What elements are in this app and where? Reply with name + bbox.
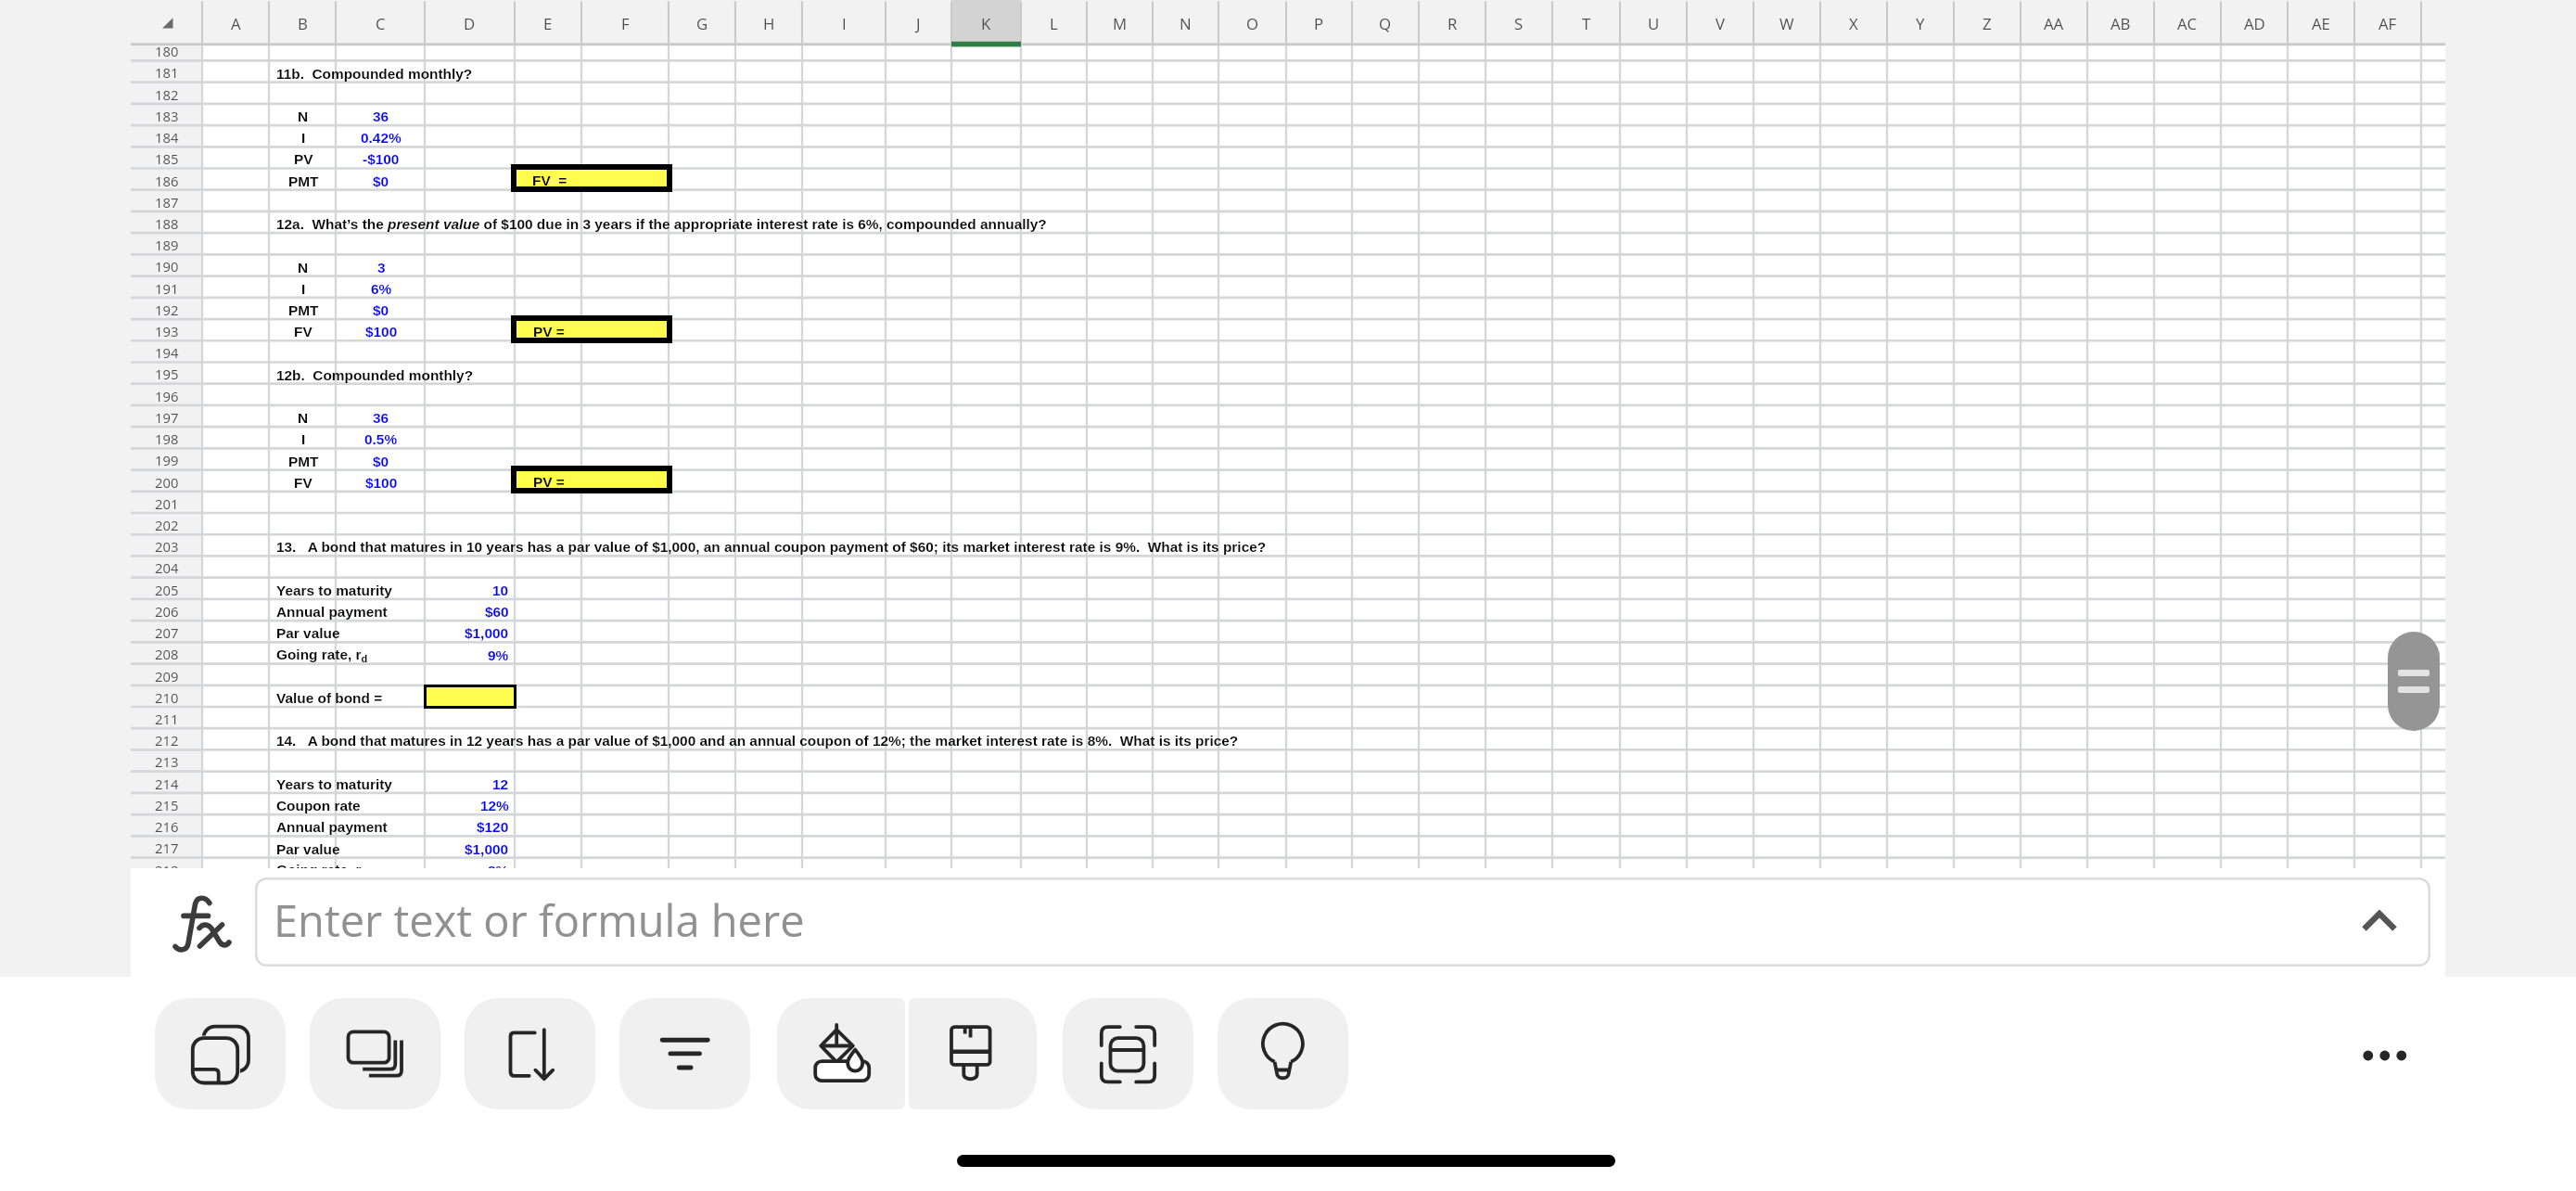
button[interactable]: O xyxy=(1218,2,1286,45)
button[interactable]: 196 xyxy=(131,385,202,406)
button[interactable]: H xyxy=(735,2,802,45)
button[interactable]: 208 xyxy=(131,643,202,664)
button[interactable]: 217 xyxy=(131,837,202,858)
button[interactable]: A xyxy=(202,2,269,45)
button[interactable]: 198 xyxy=(131,428,202,449)
button[interactable]: N xyxy=(269,106,336,127)
button[interactable]: 8% xyxy=(425,860,515,870)
button[interactable]: F xyxy=(581,2,669,45)
button[interactable]: 216 xyxy=(131,815,202,837)
button[interactable]: 10 xyxy=(425,580,515,601)
button[interactable]: N xyxy=(269,407,336,429)
button[interactable]: 186 xyxy=(131,170,202,191)
button[interactable]: Merge cells xyxy=(1063,998,1193,1109)
button[interactable]: 36 xyxy=(336,106,425,127)
button[interactable]: G xyxy=(669,2,735,45)
button[interactable]: Years to maturity xyxy=(269,774,425,795)
button[interactable]: L xyxy=(1021,2,1087,45)
button[interactable]: 0.5% xyxy=(336,429,425,450)
button[interactable]: PV = xyxy=(516,321,667,338)
button[interactable]: I xyxy=(269,278,336,300)
button[interactable]: 197 xyxy=(131,406,202,428)
button[interactable]: 189 xyxy=(131,234,202,255)
button[interactable]: 180 xyxy=(131,45,202,61)
button[interactable]: 206 xyxy=(131,600,202,621)
button[interactable]: U xyxy=(1620,2,1687,45)
button[interactable]: Select all xyxy=(131,0,202,45)
button[interactable]: Coupon rate xyxy=(269,795,425,816)
button[interactable]: T xyxy=(1552,2,1620,45)
button[interactable]: 199 xyxy=(131,449,202,470)
button[interactable]: 0.42% xyxy=(336,127,425,148)
button[interactable]: W xyxy=(1753,2,1820,45)
button[interactable]: $60 xyxy=(425,601,515,622)
button[interactable]: PV = xyxy=(516,471,667,488)
button[interactable]: PV xyxy=(269,148,336,170)
button[interactable]: FV xyxy=(269,472,336,493)
button[interactable]: 36 xyxy=(336,407,425,429)
button[interactable]: 200 xyxy=(131,471,202,493)
button[interactable]: $0 xyxy=(336,451,425,472)
button[interactable]: I xyxy=(269,429,336,450)
button[interactable]: PMT xyxy=(269,171,336,192)
button[interactable]: $100 xyxy=(336,472,425,493)
button[interactable]: -$100 xyxy=(336,148,425,170)
button[interactable]: 190 xyxy=(131,255,202,276)
button[interactable]: I xyxy=(269,127,336,148)
button[interactable]: 212 xyxy=(131,729,202,750)
button[interactable]: 194 xyxy=(131,341,202,363)
button[interactable]: S xyxy=(1486,2,1552,45)
button[interactable]: Fill colour xyxy=(777,998,905,1109)
button[interactable]: 187 xyxy=(131,191,202,212)
button[interactable]: FV = xyxy=(516,170,667,186)
button[interactable]: Annual payment xyxy=(269,816,425,838)
button[interactable]: $1,000 xyxy=(425,839,515,860)
button[interactable]: $0 xyxy=(336,171,425,192)
button[interactable]: Annual payment xyxy=(269,601,425,622)
button[interactable]: N xyxy=(1153,2,1218,45)
button[interactable]: Y xyxy=(1887,2,1954,45)
button[interactable]: Value of bond = xyxy=(269,687,425,709)
button[interactable]: 215 xyxy=(131,794,202,815)
button[interactable]: 14. A bond that matures in 12 years has … xyxy=(269,730,1820,751)
button[interactable]: K xyxy=(951,2,1021,45)
button[interactable]: 6% xyxy=(336,278,425,300)
button[interactable]: $0 xyxy=(336,300,425,321)
button[interactable]: 183 xyxy=(131,105,202,126)
button[interactable]: N xyxy=(269,257,336,278)
button[interactable]: 12b. Compounded monthly? xyxy=(269,365,886,386)
button[interactable]: FV xyxy=(269,321,336,342)
button[interactable]: AE xyxy=(2288,2,2354,45)
button[interactable]: I xyxy=(802,2,886,45)
button[interactable]: Filter xyxy=(619,998,750,1109)
button[interactable]: J xyxy=(886,2,951,45)
button[interactable]: PMT xyxy=(269,300,336,321)
button[interactable]: Format painter xyxy=(909,998,1037,1109)
button[interactable]: 181 xyxy=(131,61,202,83)
button[interactable]: 185 xyxy=(131,147,202,169)
button[interactable]: 210 xyxy=(131,686,202,708)
button[interactable]: $100 xyxy=(336,321,425,342)
button[interactable]: Sort xyxy=(465,998,595,1109)
button[interactable]: V xyxy=(1687,2,1753,45)
button[interactable]: 184 xyxy=(131,126,202,147)
button[interactable]: 192 xyxy=(131,299,202,320)
button[interactable]: AB xyxy=(2087,2,2154,45)
button[interactable]: Insert cells xyxy=(155,998,286,1109)
button[interactable]: AD xyxy=(2221,2,2288,45)
button[interactable]: Par value xyxy=(269,622,425,644)
button[interactable]: M xyxy=(1087,2,1153,45)
button[interactable]: 193 xyxy=(131,320,202,341)
button[interactable]: Expand formula bar xyxy=(2333,880,2426,967)
button[interactable]: $120 xyxy=(425,816,515,838)
button[interactable]: 203 xyxy=(131,535,202,557)
button[interactable]: D xyxy=(425,2,515,45)
button[interactable]: 182 xyxy=(131,83,202,105)
button[interactable]: C xyxy=(336,2,425,45)
button[interactable]: 3 xyxy=(336,257,425,278)
button[interactable]: 188 xyxy=(131,212,202,234)
button[interactable]: $1,000 xyxy=(425,622,515,644)
button[interactable]: Functions xyxy=(162,886,248,960)
button[interactable]: Enter text or formula here xyxy=(255,877,2430,967)
button[interactable]: 13. A bond that matures in 10 years has … xyxy=(269,536,1820,557)
